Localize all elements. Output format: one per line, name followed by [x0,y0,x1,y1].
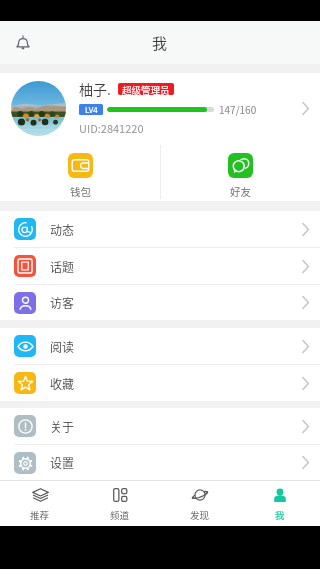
button[interactable]: 话题 [0,248,320,284]
staticText: 频道 [110,508,130,522]
staticText: 动态 [50,221,75,238]
button[interactable]: 收藏 [0,365,320,401]
staticText: UID:2841220 [79,120,144,136]
staticText: 我 [152,32,168,54]
staticText: 话题 [50,258,75,275]
button[interactable]: 设置 [0,445,320,480]
button[interactable]: 频道 [80,481,160,526]
button[interactable]: 我 [240,481,320,526]
staticText: 推荐 [30,508,50,522]
button[interactable]: 好友 [160,143,320,201]
staticText: 147/160 [219,102,257,116]
staticText: 发现 [190,508,210,522]
button[interactable]: 关于 [0,408,320,444]
staticText: 好友 [230,184,251,199]
staticText: LV4 [85,104,98,115]
staticText: 超级管理员 [122,83,170,95]
button[interactable]: 访客 [0,285,320,320]
staticText: 访客 [50,294,75,311]
button[interactable]: 推荐 [0,481,80,526]
staticText: 收藏 [50,375,75,392]
staticText: 阅读 [50,338,75,355]
button[interactable]: 动态 [0,211,320,247]
button[interactable]: Notifications [0,21,46,64]
staticText: 柚子. [79,79,111,99]
button[interactable]: 阅读 [0,328,320,364]
staticText: 设置 [50,454,75,471]
staticText: 我 [275,508,285,522]
staticText: 关于 [50,418,75,435]
staticText: 钱包 [70,184,91,199]
button[interactable]: 柚子. [0,73,320,143]
button[interactable]: 钱包 [0,143,160,201]
button[interactable]: 发现 [160,481,240,526]
